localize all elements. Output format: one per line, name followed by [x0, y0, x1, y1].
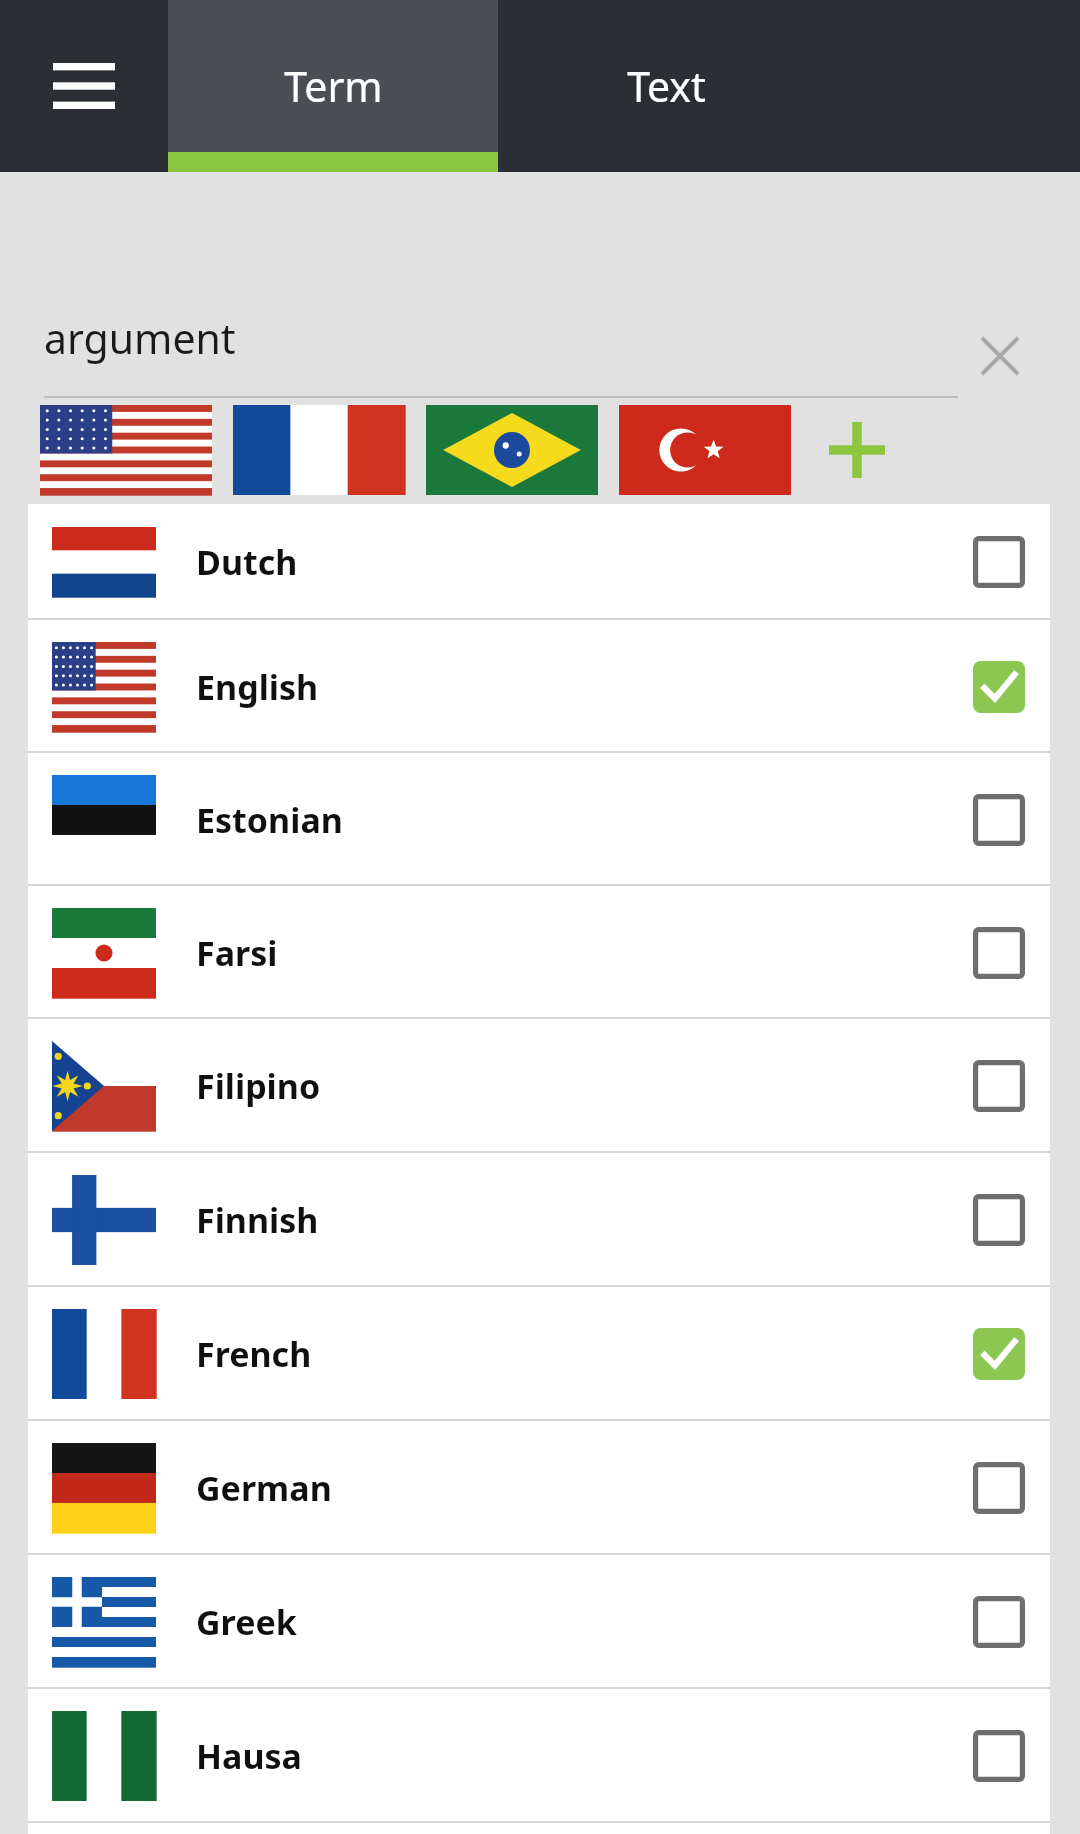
button[interactable]: Not selected	[964, 785, 1034, 855]
staticText: French	[196, 1331, 312, 1377]
button[interactable]: Not selected	[964, 1587, 1034, 1657]
staticText: German	[196, 1465, 332, 1511]
button[interactable]: Dutch	[28, 504, 1050, 620]
staticText: Finnish	[196, 1197, 319, 1243]
button[interactable]: Not selected	[964, 527, 1034, 597]
button[interactable]: argument	[44, 310, 1042, 398]
button[interactable]: Hausa	[28, 1689, 1050, 1823]
button[interactable]: Not selected	[964, 918, 1034, 988]
button[interactable]: Not selected	[964, 1721, 1034, 1791]
button[interactable]: Menu	[0, 0, 168, 172]
button[interactable]: Estonian	[28, 753, 1050, 886]
button[interactable]: Not selected	[964, 1453, 1034, 1523]
button[interactable]: Filipino	[28, 1019, 1050, 1153]
button[interactable]: Selected	[964, 1319, 1034, 1389]
staticText: Term	[284, 58, 383, 114]
button[interactable]: German	[28, 1421, 1050, 1555]
staticText: Greek	[196, 1599, 297, 1645]
staticText: Text	[627, 58, 706, 114]
button[interactable]	[619, 405, 791, 495]
button[interactable]: Term	[168, 0, 498, 172]
staticText: Hausa	[196, 1733, 302, 1779]
staticText: English	[196, 664, 319, 710]
button[interactable]: French	[28, 1287, 1050, 1421]
staticText: argument	[44, 310, 236, 366]
button[interactable]: Farsi	[28, 886, 1050, 1019]
button[interactable]	[426, 405, 598, 495]
staticText: Filipino	[196, 1063, 321, 1109]
button[interactable]: English	[28, 620, 1050, 753]
button[interactable]: Clear	[958, 314, 1042, 398]
button[interactable]: Text	[498, 0, 834, 172]
staticText: Dutch	[196, 539, 298, 585]
button[interactable]: Finnish	[28, 1153, 1050, 1287]
button[interactable]: Selected	[964, 652, 1034, 722]
button[interactable]: Add language	[812, 405, 902, 495]
button[interactable]	[233, 405, 405, 495]
button[interactable]: Greek	[28, 1555, 1050, 1689]
button[interactable]	[40, 405, 212, 495]
button[interactable]: Not selected	[964, 1185, 1034, 1255]
staticText: Farsi	[196, 930, 278, 976]
button[interactable]: Not selected	[964, 1051, 1034, 1121]
staticText: Estonian	[196, 797, 343, 843]
